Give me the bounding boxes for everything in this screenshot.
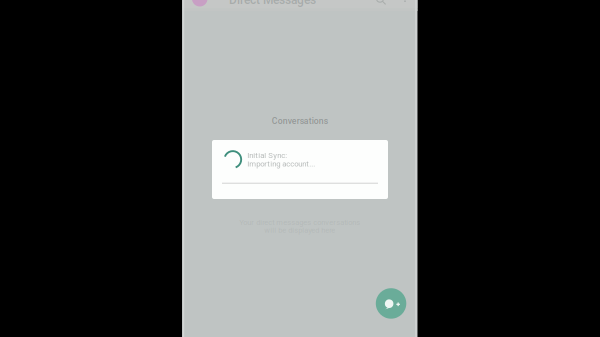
staticText: Initial Sync: xyxy=(247,151,287,160)
staticText: Importing account... xyxy=(247,159,315,168)
staticText: Direct Messages xyxy=(229,0,316,7)
staticText: Conversations xyxy=(272,116,328,126)
button[interactable]: New message xyxy=(376,288,406,319)
button[interactable]: Search xyxy=(376,0,387,5)
button[interactable]: More options xyxy=(402,0,408,4)
button[interactable]: Account xyxy=(192,0,207,6)
